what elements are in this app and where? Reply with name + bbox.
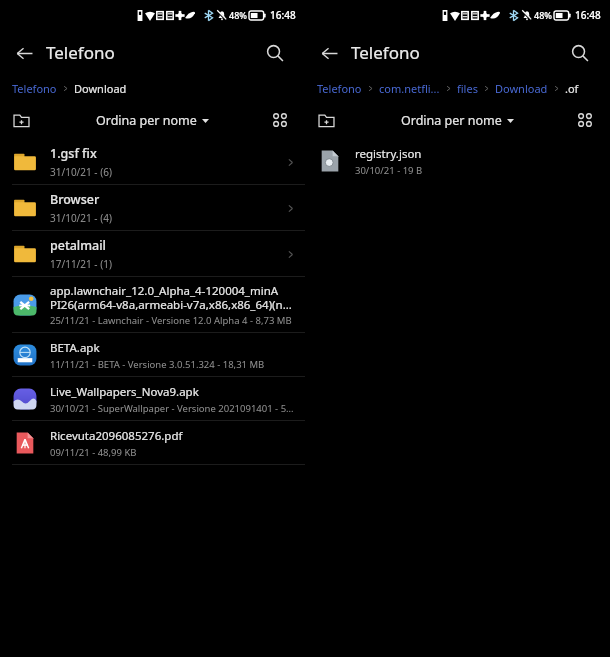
button[interactable]: registry.json <box>305 139 610 183</box>
button[interactable]: Telefono <box>317 81 362 96</box>
staticText: 11/11/21 - BETA - Versione 3.0.51.324 - … <box>50 358 265 371</box>
button[interactable]: Telefono <box>12 81 57 96</box>
staticText: 31/10/21 - (4) <box>50 211 112 225</box>
staticText: 30/10/21 - SuperWallpaper - Versione 202… <box>50 402 295 415</box>
button[interactable]: Grid view <box>265 105 295 135</box>
button[interactable]: app.lawnchair_12.0_Alpha_4-120004_minA P… <box>0 277 305 333</box>
staticText: 48% <box>534 9 552 21</box>
staticText: 17/11/21 - (1) <box>50 257 112 271</box>
staticText: 25/11/21 - Lawnchair - Versione 12.0 Alp… <box>50 314 292 327</box>
staticText: Live_Wallpapers_Nova9.apk <box>50 384 199 400</box>
button[interactable]: petalmail <box>0 231 305 277</box>
button[interactable]: Back <box>8 37 40 69</box>
button[interactable]: Ordina per nome <box>90 109 215 132</box>
button[interactable]: Ordina per nome <box>395 109 520 132</box>
staticText: app.lawnchair_12.0_Alpha_4-120004_minA P… <box>50 283 295 312</box>
button[interactable]: 1.gsf fix <box>0 139 305 185</box>
button[interactable]: New folder <box>311 105 341 135</box>
staticText: registry.json <box>355 146 422 162</box>
staticText: Ricevuta2096085276.pdf <box>50 428 183 444</box>
staticText: 48% <box>229 9 247 21</box>
button[interactable]: Download <box>74 81 127 96</box>
staticText: Telefono <box>46 41 115 64</box>
button[interactable]: files <box>457 81 478 96</box>
staticText: 1.gsf fix <box>50 145 97 162</box>
button[interactable]: Ricevuta2096085276.pdf <box>0 421 305 465</box>
button[interactable]: .of <box>565 81 579 96</box>
staticText: Telefono <box>351 41 420 64</box>
staticText: BETA.apk <box>50 340 100 356</box>
staticText: Browser <box>50 191 100 208</box>
staticText: 16:48 <box>270 8 296 22</box>
button[interactable]: New folder <box>6 105 36 135</box>
button[interactable]: Live_Wallpapers_Nova9.apk <box>0 377 305 421</box>
button[interactable]: com.netfli... <box>379 81 440 96</box>
staticText: 09/11/21 - 48,99 KB <box>50 446 137 459</box>
staticText: petalmail <box>50 237 106 254</box>
button[interactable]: Search <box>564 37 596 69</box>
staticText: 30/10/21 - 19 B <box>355 164 423 177</box>
button[interactable]: Back <box>313 37 345 69</box>
staticText: 16:48 <box>575 8 601 22</box>
button[interactable]: Download <box>495 81 548 96</box>
button[interactable]: Browser <box>0 185 305 231</box>
button[interactable]: Grid view <box>570 105 600 135</box>
staticText: Ordina per nome <box>401 112 502 129</box>
staticText: Ordina per nome <box>96 112 197 129</box>
button[interactable]: Search <box>259 37 291 69</box>
staticText: 31/10/21 - (6) <box>50 165 112 179</box>
button[interactable]: BETA.apk <box>0 333 305 377</box>
